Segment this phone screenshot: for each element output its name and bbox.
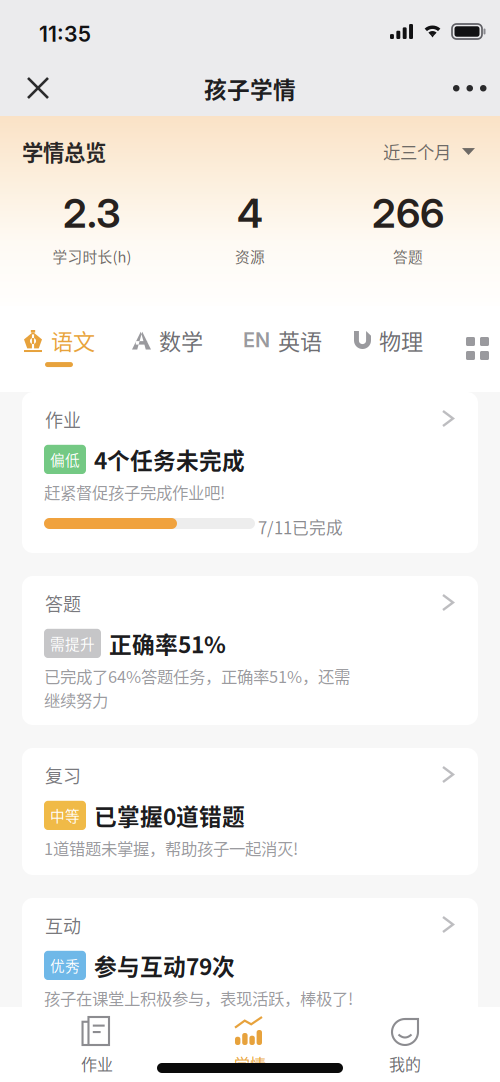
staticText: 答题 [45,590,81,616]
staticText: 11:35 [39,21,91,47]
staticText: 作业 [45,406,81,432]
button[interactable]: 复习 [22,748,478,875]
staticText: 偏低 [50,449,80,470]
staticText: 复习 [45,762,81,788]
button[interactable]: 全部科目 [450,321,500,376]
button[interactable]: 更多 [436,63,500,113]
button[interactable]: 互动 [22,898,478,1025]
staticText: 2.3 [63,189,121,237]
button[interactable]: 近三个月 [383,133,475,170]
staticText: 孩子学情 [204,72,296,105]
staticText: 答题 [393,245,423,267]
staticText: 学情 [234,1052,266,1075]
button[interactable]: 我的 [345,1017,465,1075]
button[interactable]: 物理 [344,324,433,367]
staticText: 7/11已完成 [258,515,343,539]
staticText: 已掌握0道错题 [94,799,245,832]
staticText: 近三个月 [383,139,451,164]
staticText: 中等 [50,805,80,826]
staticText: 参与互动79次 [94,949,235,982]
staticText: 需提升 [50,633,95,654]
staticText: 赶紧督促孩子完成作业吧! [44,480,225,504]
staticText: 优秀 [50,955,80,976]
staticText: 已完成了64%答题任务，正确率51%，还需 继续努力 [44,664,350,711]
button[interactable]: 作业 [37,1017,157,1075]
staticText: 作业 [81,1052,113,1075]
staticText: EN [243,328,270,352]
staticText: 语文 [51,324,95,356]
staticText: 数学 [159,324,203,356]
staticText: 4个任务未完成 [94,443,245,476]
staticText: 互动 [45,912,81,938]
staticText: 孩子在课堂上积极参与，表现活跃，棒极了! [44,986,353,1010]
staticText: 我的 [389,1052,421,1075]
staticText: 学习时长(h) [52,245,131,267]
button[interactable]: 答题 [22,576,478,725]
staticText: 正确率51% [109,627,226,660]
button[interactable]: 学情 [190,1017,310,1075]
staticText: 学情总览 [22,136,106,167]
button[interactable]: 作业 [22,392,478,553]
staticText: 4 [237,189,263,237]
button[interactable]: 语文 [13,324,105,367]
button[interactable]: 关闭 [10,63,66,113]
staticText: 1道错题未掌握，帮助孩子一起消灭! [44,836,298,860]
staticText: 英语 [278,324,322,356]
button[interactable]: 数学 [122,324,213,367]
staticText: 资源 [235,245,265,267]
staticText: 物理 [379,324,423,356]
staticText: 266 [372,189,444,237]
button[interactable]: EN [233,324,332,367]
